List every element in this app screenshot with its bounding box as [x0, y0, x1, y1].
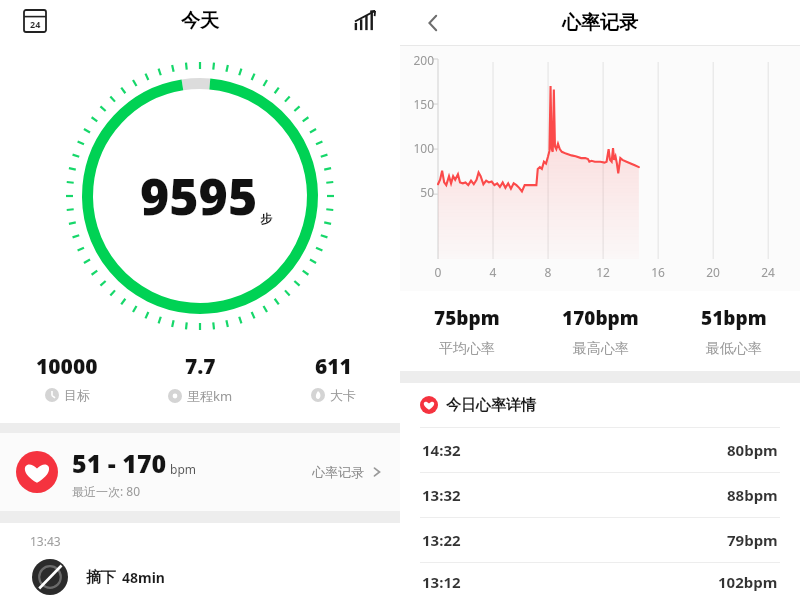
staticText: 13:12	[422, 572, 461, 592]
staticText: 51bpm	[701, 305, 767, 331]
staticText: 平均心率	[439, 340, 495, 358]
staticText: 16	[649, 264, 667, 280]
staticText: 7.7	[185, 352, 216, 381]
staticText: 最高心率	[573, 340, 629, 358]
button[interactable]: 13:22	[400, 518, 800, 562]
staticText: 75bpm	[434, 305, 500, 331]
staticText: 48min	[122, 568, 165, 587]
staticText: 13:32	[422, 485, 461, 505]
staticText: 最低心率	[706, 340, 762, 358]
staticText: 611	[315, 352, 352, 381]
staticText: 80bpm	[727, 440, 778, 460]
staticText: 13:22	[422, 530, 461, 550]
staticText: 0	[429, 264, 447, 280]
staticText: 100	[406, 140, 434, 156]
staticText: 24	[759, 264, 777, 280]
button[interactable]: 10000	[0, 352, 134, 403]
button[interactable]: 75bpm	[400, 291, 534, 371]
staticText: 心率记录	[562, 11, 638, 35]
staticText: 20	[704, 264, 722, 280]
button[interactable]: 611	[267, 352, 400, 403]
staticText: 摘下	[86, 568, 116, 587]
staticText: 200	[406, 52, 434, 68]
staticText: 今天	[181, 9, 219, 33]
staticText: 14:32	[422, 440, 461, 460]
button[interactable]: 170bpm	[534, 291, 667, 371]
staticText: 79bpm	[727, 530, 778, 550]
staticText: 里程km	[187, 387, 233, 405]
staticText: 50	[406, 184, 434, 200]
staticText: 大卡	[330, 387, 356, 403]
button[interactable]: Back	[418, 8, 448, 38]
button[interactable]: 51 - 170	[0, 433, 400, 511]
staticText: 102bpm	[718, 572, 778, 592]
staticText: 51 - 170	[72, 446, 167, 480]
staticText: 150	[406, 96, 434, 112]
button[interactable]: Calendar	[20, 6, 50, 36]
staticText: 12	[594, 264, 612, 280]
staticText: 13:43	[30, 533, 61, 549]
staticText: 170bpm	[562, 305, 639, 331]
button[interactable]: Statistics	[350, 6, 380, 36]
staticText: 心率记录	[312, 464, 364, 480]
staticText: 目标	[64, 387, 90, 403]
staticText: 最近一次: 80	[72, 483, 141, 499]
staticText: 10000	[36, 352, 98, 381]
staticText: 步	[260, 211, 272, 226]
staticText: bpm	[170, 461, 196, 477]
staticText: 今日心率详情	[446, 396, 536, 415]
button[interactable]: 51bpm	[667, 291, 800, 371]
staticText: 24	[30, 18, 41, 30]
button[interactable]: 14:32	[400, 428, 800, 472]
button[interactable]: 13:32	[400, 473, 800, 517]
staticText: 88bpm	[727, 485, 778, 505]
button[interactable]: 7.7	[134, 352, 267, 405]
staticText: 9595	[140, 162, 258, 230]
staticText: 8	[539, 264, 557, 280]
button[interactable]: 13:12	[400, 563, 800, 600]
staticText: 4	[484, 264, 502, 280]
